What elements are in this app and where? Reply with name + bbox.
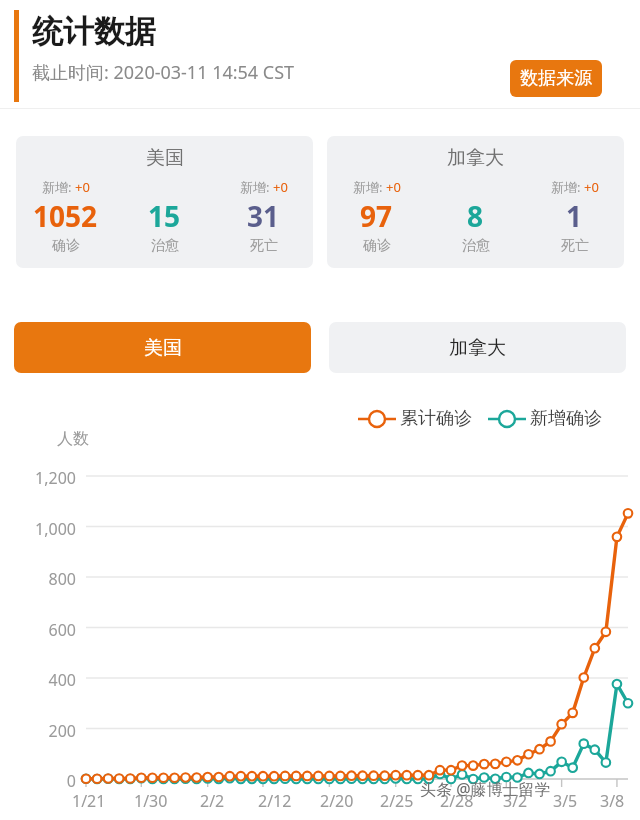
- staticText: +0: [584, 178, 599, 196]
- staticText: 死亡: [561, 237, 589, 255]
- staticText: 治愈: [151, 237, 179, 255]
- staticText: 2/2: [200, 790, 225, 812]
- staticText: 15: [148, 197, 181, 235]
- staticText: 600: [0, 619, 76, 641]
- staticText: 8: [467, 197, 484, 235]
- staticText: 800: [0, 568, 76, 590]
- staticText: 1/21: [72, 790, 106, 812]
- staticText: 2/28: [440, 790, 474, 812]
- staticText: 1,000: [0, 518, 76, 540]
- staticText: 累计确诊: [400, 407, 472, 430]
- staticText: 1: [566, 197, 583, 235]
- staticText: 确诊: [52, 237, 80, 255]
- staticText: 3/5: [553, 790, 578, 812]
- staticText: +0: [386, 178, 401, 196]
- staticText: 3/2: [503, 790, 528, 812]
- button[interactable]: 加拿大: [327, 136, 624, 268]
- staticText: 美国: [146, 146, 184, 170]
- staticText: 1052: [33, 197, 98, 235]
- staticText: 2/25: [380, 790, 414, 812]
- staticText: 新增:: [551, 178, 584, 196]
- staticText: 新增:: [42, 178, 75, 196]
- staticText: 治愈: [462, 237, 490, 255]
- staticText: 31: [247, 197, 280, 235]
- staticText: 1/30: [134, 790, 168, 812]
- staticText: 新增:: [240, 178, 273, 196]
- staticText: 死亡: [250, 237, 278, 255]
- staticText: 新增确诊: [530, 407, 602, 430]
- staticText: +0: [273, 178, 288, 196]
- staticText: 0: [0, 770, 76, 792]
- staticText: 加拿大: [449, 336, 506, 360]
- staticText: 3/8: [600, 790, 625, 812]
- staticText: 人数: [57, 429, 89, 449]
- button[interactable]: 美国: [14, 322, 311, 373]
- staticText: 400: [0, 669, 76, 691]
- staticText: 200: [0, 720, 76, 742]
- button[interactable]: 美国: [16, 136, 313, 268]
- staticText: 头条 @藤博士留学: [420, 778, 551, 800]
- button[interactable]: 加拿大: [329, 322, 626, 373]
- staticText: 2/20: [320, 790, 354, 812]
- staticText: 统计数据: [32, 12, 156, 51]
- staticText: 1,200: [0, 467, 76, 489]
- staticText: 2/12: [258, 790, 292, 812]
- staticText: 确诊: [363, 237, 391, 255]
- staticText: 97: [360, 197, 393, 235]
- staticText: +0: [75, 178, 90, 196]
- button[interactable]: 数据来源: [510, 60, 602, 97]
- staticText: 美国: [144, 336, 182, 360]
- staticText: 新增:: [353, 178, 386, 196]
- staticText: 加拿大: [447, 146, 504, 170]
- staticText: 截止时间: 2020-03-11 14:54 CST: [32, 60, 295, 85]
- staticText: 数据来源: [520, 67, 592, 90]
